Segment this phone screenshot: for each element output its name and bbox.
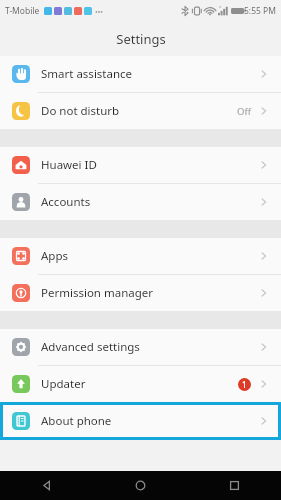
button[interactable]: Updater xyxy=(0,366,281,402)
staticText: Updater xyxy=(41,376,86,392)
button[interactable]: Do not disturb xyxy=(0,93,281,129)
button[interactable]: Permission manager xyxy=(0,275,281,311)
button[interactable]: Smart assistance xyxy=(0,56,281,92)
staticText: Do not disturb xyxy=(41,103,120,119)
button[interactable]: Huawei ID xyxy=(0,147,281,183)
button[interactable]: Home xyxy=(93,471,187,500)
staticText: Huawei ID xyxy=(41,157,97,173)
staticText: Settings xyxy=(116,30,166,48)
staticText: Accounts xyxy=(41,194,91,210)
staticText: T-Mobile xyxy=(5,5,40,17)
staticText: Advanced settings xyxy=(41,339,140,355)
staticText: Smart assistance xyxy=(41,66,133,82)
button[interactable]: About phone xyxy=(3,405,278,437)
staticText: Off xyxy=(237,105,251,118)
button[interactable]: Accounts xyxy=(0,184,281,220)
button[interactable]: Apps xyxy=(0,238,281,274)
staticText: About phone xyxy=(41,413,112,429)
staticText: Permission manager xyxy=(41,285,154,301)
button[interactable]: Back xyxy=(0,471,93,500)
staticText: Apps xyxy=(41,248,69,264)
staticText: 5:55 PM xyxy=(244,5,276,17)
button[interactable]: Advanced settings xyxy=(0,329,281,365)
button[interactable]: Recents xyxy=(187,471,281,500)
staticText: 1 xyxy=(242,379,247,390)
